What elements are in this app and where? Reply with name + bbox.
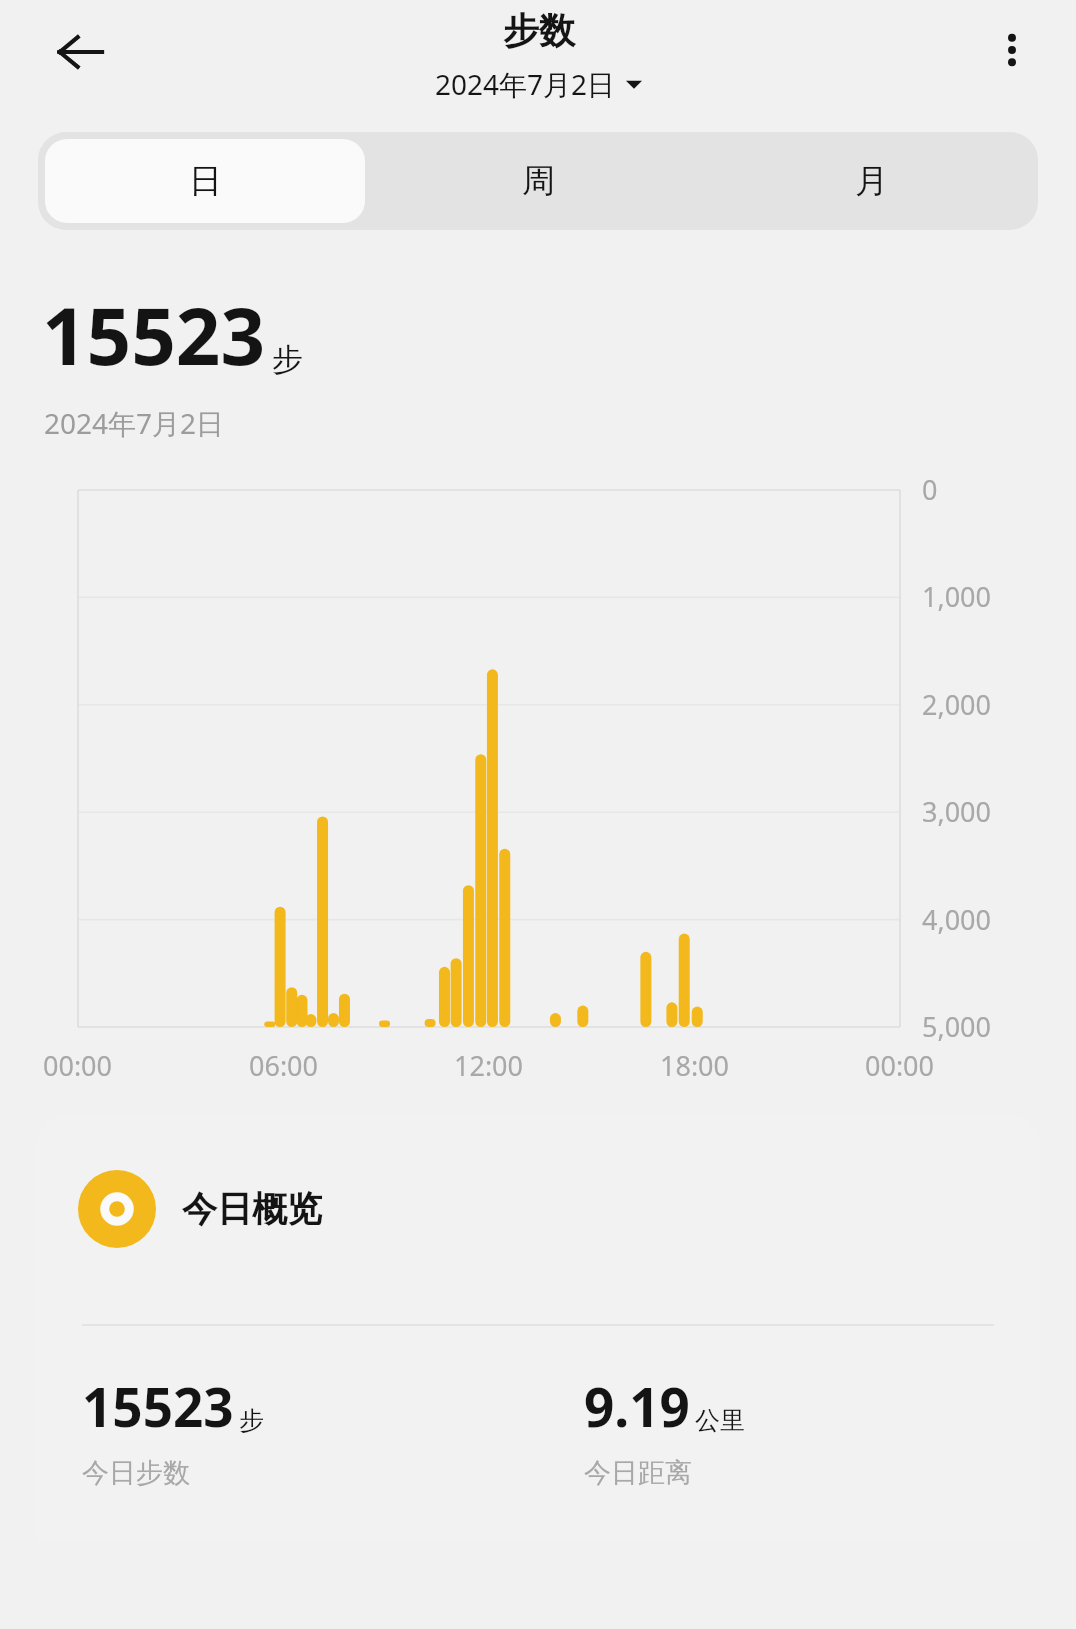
- staticText: 9.19: [584, 1370, 690, 1442]
- staticText: 18:00: [660, 1047, 730, 1084]
- staticText: 今日步数: [82, 1456, 190, 1490]
- button[interactable]: 2024年7月2日: [429, 63, 648, 105]
- button[interactable]: 周: [379, 139, 698, 223]
- staticText: 06:00: [249, 1047, 319, 1084]
- button[interactable]: More options: [976, 14, 1048, 86]
- staticText: 5,000: [922, 1008, 992, 1045]
- staticText: 2,000: [922, 686, 992, 723]
- staticText: 1,000: [922, 578, 992, 615]
- button[interactable]: Back: [42, 14, 118, 90]
- button[interactable]: 月: [712, 139, 1031, 223]
- staticText: 3,000: [922, 793, 992, 830]
- staticText: 今日概览: [182, 1187, 322, 1231]
- staticText: 公里: [695, 1405, 745, 1436]
- staticText: 00:00: [865, 1047, 935, 1084]
- staticText: 12:00: [454, 1047, 524, 1084]
- staticText: 今日距离: [584, 1456, 692, 1490]
- staticText: 2024年7月2日: [435, 65, 616, 103]
- staticText: 步数: [503, 8, 575, 53]
- staticText: 步: [272, 340, 303, 379]
- staticText: 00:00: [43, 1047, 113, 1084]
- staticText: 日: [189, 160, 222, 202]
- staticText: 步: [239, 1405, 264, 1436]
- button[interactable]: 9.19: [538, 1370, 1040, 1490]
- staticText: 周: [522, 160, 555, 202]
- staticText: 15523: [82, 1370, 234, 1442]
- button[interactable]: 日: [45, 139, 365, 223]
- staticText: 15523: [42, 282, 266, 388]
- staticText: 2024年7月2日: [44, 404, 225, 442]
- staticText: 月: [855, 160, 888, 202]
- button[interactable]: 今日概览: [36, 1170, 1040, 1248]
- button[interactable]: 15523: [36, 1370, 538, 1490]
- staticText: 4,000: [922, 901, 992, 938]
- staticText: 0: [922, 471, 938, 508]
